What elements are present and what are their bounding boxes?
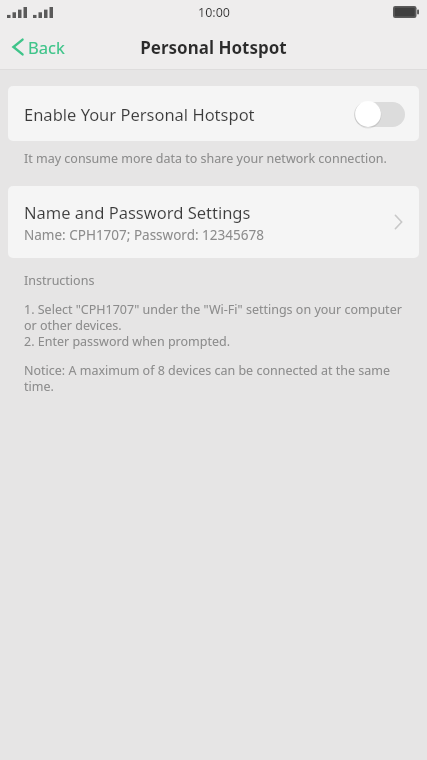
staticText: 1. Select "CPH1707" under the "Wi-Fi" se… [24, 301, 403, 333]
staticText: Enable Your Personal Hotspot [24, 103, 255, 125]
staticText: 10:00 [198, 4, 230, 21]
staticText: Personal Hotspot [140, 36, 287, 59]
button[interactable]: Enable Personal Hotspot toggle [354, 100, 405, 128]
button[interactable]: Back [0, 30, 77, 64]
staticText: It may consume more data to share your n… [24, 150, 387, 167]
staticText: Instructions [24, 272, 95, 289]
staticText: Name and Password Settings [24, 201, 251, 223]
button[interactable]: Enable Your Personal Hotspot [8, 86, 419, 141]
staticText: Back [28, 36, 65, 58]
button[interactable]: Name and Password Settings [8, 186, 419, 258]
staticText: Name: CPH1707; Password: 12345678 [24, 226, 264, 244]
staticText: Notice: A maximum of 8 devices can be co… [24, 362, 403, 394]
staticText: 2. Enter password when prompted. [24, 333, 231, 350]
